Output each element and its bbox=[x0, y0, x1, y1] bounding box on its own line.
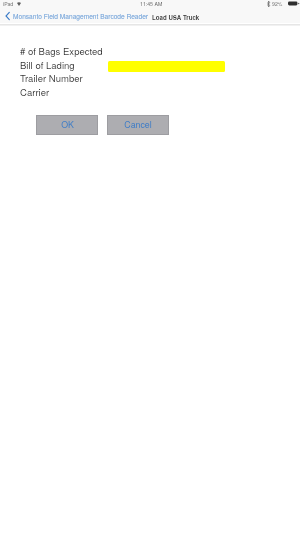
staticText: OK bbox=[61, 118, 74, 131]
staticText: Cancel bbox=[124, 118, 152, 131]
button[interactable]: Cancel bbox=[107, 115, 169, 135]
staticText: Trailer Number bbox=[20, 71, 83, 85]
staticText: Monsanto Field Management Barcode Reader bbox=[13, 11, 149, 20]
staticText: Carrier bbox=[20, 85, 50, 99]
button[interactable]: OK bbox=[36, 115, 98, 135]
button[interactable]: Bill of Lading field bbox=[108, 61, 225, 72]
staticText: iPad bbox=[3, 0, 14, 7]
staticText: # of Bags Expected bbox=[20, 44, 103, 58]
staticText: Load USA Truck bbox=[152, 13, 200, 22]
staticText: Bill of Lading bbox=[20, 58, 75, 72]
button[interactable]: Back to Monsanto Field Management Barcod… bbox=[5, 11, 149, 20]
staticText: 92% bbox=[272, 0, 283, 7]
staticText: 11:45 AM bbox=[140, 0, 163, 7]
